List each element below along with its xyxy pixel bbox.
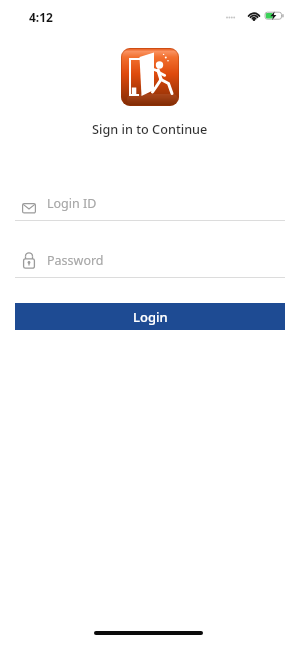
- button[interactable]: Password: [15, 251, 285, 278]
- staticText: Password: [47, 252, 104, 269]
- staticText: 4:12: [29, 9, 53, 25]
- button[interactable]: Login: [15, 303, 285, 330]
- staticText: Sign in to Continue: [92, 120, 208, 137]
- button[interactable]: Login ID: [15, 194, 285, 221]
- staticText: Login ID: [47, 195, 97, 212]
- staticText: Login: [133, 308, 168, 326]
